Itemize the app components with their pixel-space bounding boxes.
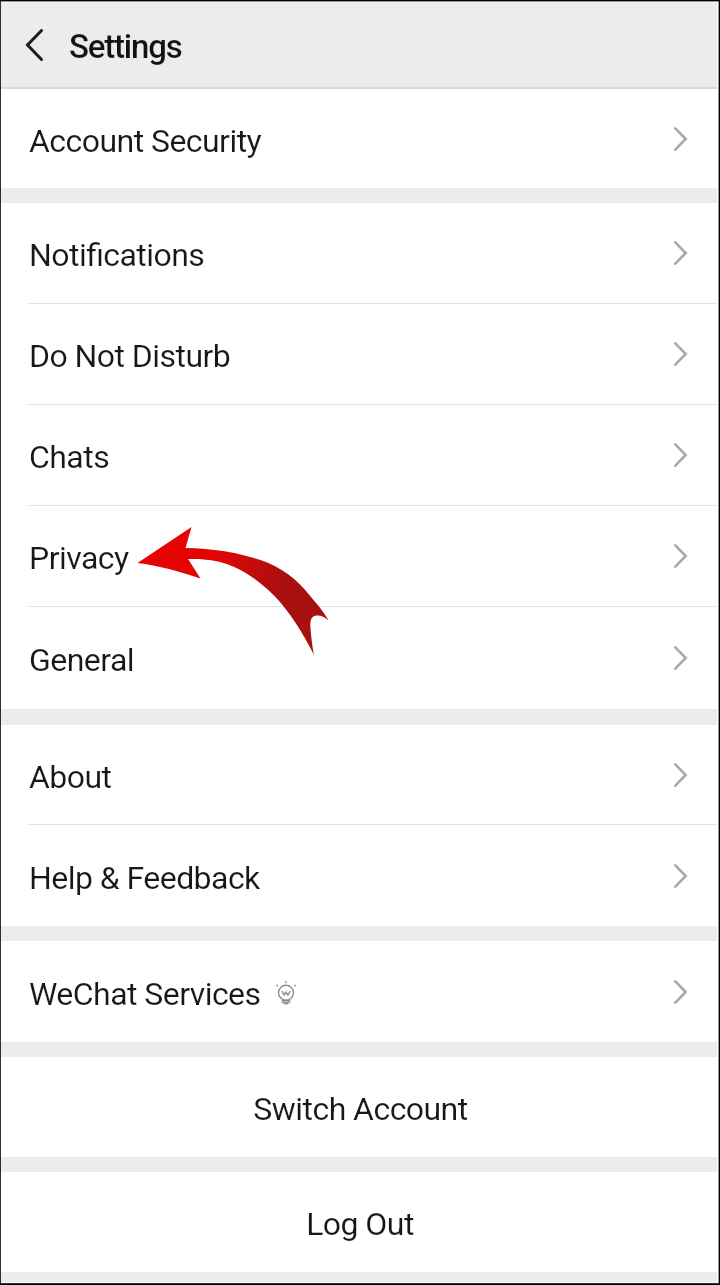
- button[interactable]: WeChat Services: [0, 941, 720, 1042]
- staticText: About: [29, 758, 112, 796]
- staticText: Help & Feedback: [29, 859, 260, 897]
- button[interactable]: Privacy: [0, 506, 720, 607]
- staticText: Notifications: [29, 236, 205, 274]
- button[interactable]: Switch Account: [0, 1057, 720, 1157]
- staticText: WeChat Services: [29, 975, 261, 1013]
- staticText: Log Out: [306, 1205, 414, 1243]
- staticText: General: [29, 641, 134, 679]
- staticText: Do Not Disturb: [29, 337, 231, 375]
- button[interactable]: Account Security: [0, 89, 720, 188]
- button[interactable]: Log Out: [0, 1172, 720, 1272]
- button[interactable]: General: [0, 607, 720, 709]
- button[interactable]: Back: [0, 0, 69, 87]
- button[interactable]: Chats: [0, 405, 720, 506]
- staticText: Account Security: [29, 122, 262, 160]
- button[interactable]: Help & Feedback: [0, 825, 720, 926]
- button[interactable]: Do Not Disturb: [0, 304, 720, 405]
- staticText: Chats: [29, 438, 110, 476]
- staticText: Settings: [69, 27, 182, 66]
- button[interactable]: Notifications: [0, 203, 720, 304]
- staticText: Privacy: [29, 539, 129, 577]
- button[interactable]: About: [0, 725, 720, 825]
- staticText: Switch Account: [253, 1090, 468, 1128]
